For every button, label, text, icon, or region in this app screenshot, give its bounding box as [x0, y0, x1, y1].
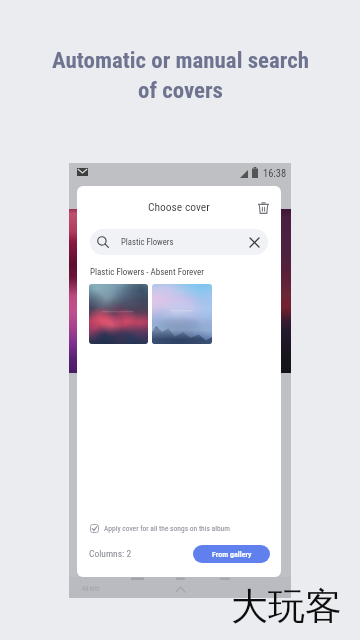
- button[interactable]: [152, 284, 212, 344]
- staticText: Choose cover: [148, 200, 210, 213]
- button[interactable]: Apply cover for all the songs on this al…: [90, 524, 230, 533]
- staticText: From gallery: [212, 550, 252, 559]
- staticText: Columns: 2: [89, 548, 132, 559]
- button[interactable]: [89, 284, 148, 344]
- button[interactable]: Delete cover: [251, 196, 275, 220]
- button[interactable]: Plastic Flowers: [90, 229, 268, 255]
- staticText: 16:38: [263, 167, 287, 179]
- staticText: 大玩客: [231, 583, 342, 630]
- staticText: Apply cover for all the songs on this al…: [104, 524, 230, 533]
- staticText: Automatic or manual search of covers: [52, 47, 309, 103]
- staticText: Plastic Flowers - Absent Forever: [90, 267, 204, 278]
- staticText: 44 kHz: [82, 585, 100, 593]
- button[interactable]: From gallery: [193, 545, 270, 563]
- staticText: Plastic Flowers: [121, 237, 174, 247]
